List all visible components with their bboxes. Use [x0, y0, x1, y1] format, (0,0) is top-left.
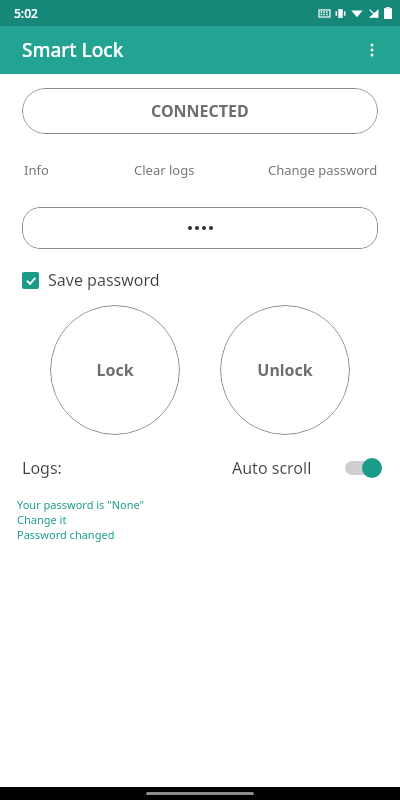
- button[interactable]: [22, 207, 378, 249]
- staticText: CONNECTED: [151, 100, 249, 122]
- button[interactable]: Change password: [267, 161, 400, 179]
- staticText: 5:02: [14, 5, 38, 21]
- staticText: Change password: [268, 161, 378, 179]
- staticText: Clear logs: [134, 161, 195, 179]
- button[interactable]: More options: [352, 30, 392, 70]
- button[interactable]: Lock: [50, 305, 180, 435]
- button[interactable]: Unlock: [220, 305, 350, 435]
- staticText: Unlock: [257, 359, 313, 381]
- staticText: Lock: [96, 359, 134, 381]
- button[interactable]: Info: [24, 161, 134, 179]
- staticText: Your password is "None": [17, 497, 145, 512]
- button[interactable]: CONNECTED: [22, 88, 378, 134]
- button[interactable]: Clear logs: [134, 161, 267, 179]
- staticText: Auto scroll: [232, 457, 312, 479]
- staticText: Smart Lock: [22, 37, 124, 63]
- staticText: Logs:: [22, 457, 62, 479]
- staticText: Info: [24, 161, 49, 179]
- staticText: Change it: [17, 512, 67, 527]
- button[interactable]: Auto scroll toggle: [342, 457, 382, 479]
- staticText: Save password: [48, 269, 160, 291]
- staticText: Password changed: [17, 527, 115, 542]
- button[interactable]: Save password: [22, 269, 160, 291]
